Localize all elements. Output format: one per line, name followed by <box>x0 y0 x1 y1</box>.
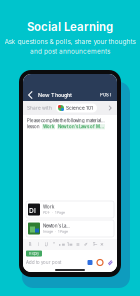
staticText: and post announcements <box>30 47 110 55</box>
button[interactable]: Format text <box>58 239 66 250</box>
button[interactable]: Format text <box>50 239 58 250</box>
button[interactable]: Share with <box>23 101 117 115</box>
staticText: lesson <box>27 124 40 129</box>
staticText: Work <box>43 124 54 129</box>
staticText: Add to your post <box>26 260 61 265</box>
button[interactable]: Format text <box>26 239 34 250</box>
button[interactable]: Newton's Laws of Motion <box>26 220 114 237</box>
staticText: T̶ <box>92 241 95 248</box>
staticText: Image · 1 Page <box>43 229 68 234</box>
staticText: DI <box>29 206 36 215</box>
button[interactable]: Format text <box>34 239 42 250</box>
button[interactable]: Add poll <box>97 259 103 265</box>
staticText: U <box>44 242 47 247</box>
staticText: PDF · 1 Page <box>43 210 65 215</box>
staticText: Share with <box>27 105 52 111</box>
staticText: Work <box>43 204 54 209</box>
button[interactable]: Add photo <box>87 259 93 265</box>
staticText: ” <box>53 242 55 247</box>
button[interactable]: Attach file <box>107 259 113 265</box>
staticText: ≡ <box>76 242 80 247</box>
button[interactable]: POST <box>100 90 112 100</box>
button[interactable]: Format text <box>42 239 50 250</box>
staticText: New Thought <box>38 92 72 98</box>
button[interactable]: Format text <box>82 239 90 250</box>
button[interactable]: Back <box>26 89 36 101</box>
staticText: B <box>28 242 31 247</box>
staticText: POST <box>100 92 112 98</box>
button[interactable]: DI <box>26 201 114 218</box>
button[interactable]: Reply <box>26 250 42 256</box>
staticText: Please complete the following material r… <box>27 118 105 123</box>
staticText: ✐ <box>84 242 88 247</box>
staticText: ✕ <box>100 242 104 247</box>
button[interactable]: Format text <box>90 239 98 250</box>
staticText: •≡ <box>58 242 65 247</box>
staticText: Newton's Laws of Motion <box>58 124 104 129</box>
staticText: 1≡ <box>67 242 73 247</box>
staticText: Science 101 <box>66 105 93 111</box>
staticText: Ask questions & polls, share your though… <box>4 38 135 45</box>
button[interactable]: Format text <box>74 239 82 250</box>
button[interactable]: Format text <box>66 239 74 250</box>
button[interactable]: Format text <box>98 239 106 250</box>
staticText: Reply <box>29 251 39 256</box>
staticText: Social Learning <box>27 20 113 34</box>
staticText: Newton's Laws of Motion <box>43 223 69 228</box>
